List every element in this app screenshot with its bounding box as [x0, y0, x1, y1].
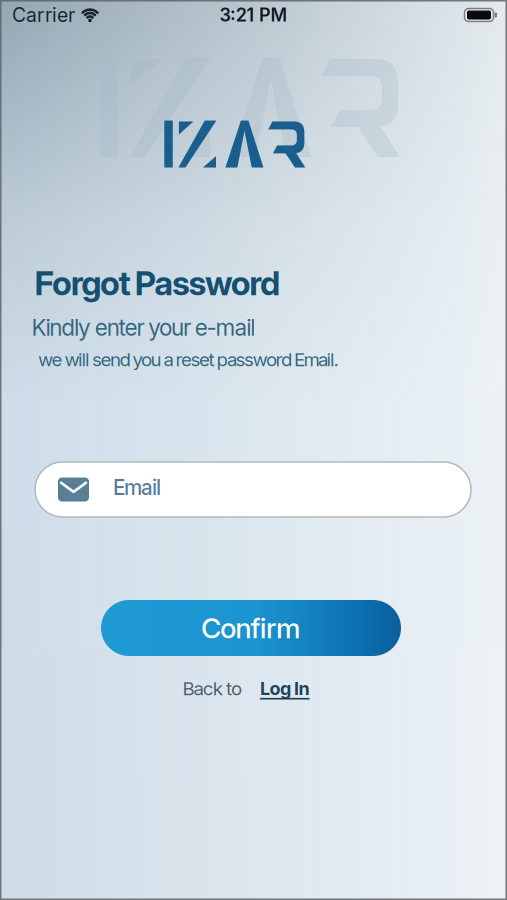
staticText: we will send you a reset password Email. [38, 348, 338, 371]
staticText: Kindly enter your e-mail [31, 314, 255, 341]
staticText: Back to [182, 677, 242, 700]
button[interactable]: Email [35, 462, 471, 517]
staticText: Log In [260, 678, 309, 699]
staticText: Confirm [201, 611, 301, 645]
staticText: Carrier [12, 3, 75, 27]
button[interactable]: Confirm [101, 600, 401, 656]
button[interactable]: Log In [260, 678, 309, 699]
staticText: 3:21 PM [219, 4, 288, 26]
staticText: Email [113, 475, 161, 500]
staticText: Forgot Password [34, 263, 280, 303]
